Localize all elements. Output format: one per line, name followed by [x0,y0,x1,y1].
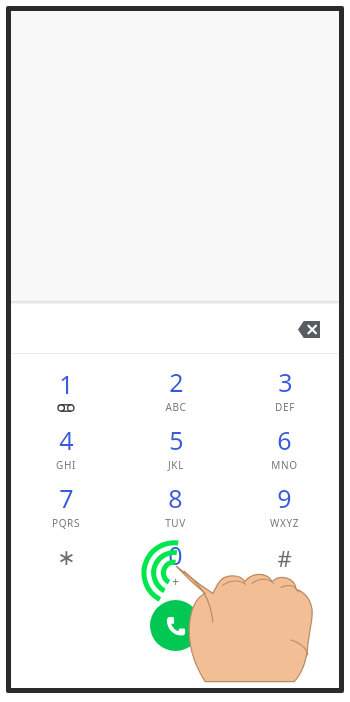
staticText: 6 [277,423,292,457]
staticText: 5 [169,423,184,457]
staticText: TUV [165,516,186,530]
staticText: GHI [56,458,76,472]
staticText: 0 [168,538,183,572]
staticText: 9 [277,481,292,515]
button[interactable]: ∗ [11,534,121,592]
staticText: + [172,573,180,589]
staticText: PQRS [52,516,80,530]
button[interactable]: 5 [121,418,230,476]
button[interactable]: Call [150,600,201,651]
staticText: 4 [59,423,74,457]
staticText: ABC [165,400,187,414]
button[interactable]: 7 [11,476,121,534]
button[interactable]: 3 [230,360,339,418]
staticText: MNO [271,458,298,472]
staticText: 1 [59,367,74,401]
staticText: 7 [59,481,74,515]
staticText: # [277,543,292,573]
staticText: DEF [275,400,295,414]
staticText: WXYZ [270,516,299,530]
button[interactable]: 0 [121,534,230,592]
button[interactable]: 6 [230,418,339,476]
staticText: 3 [278,365,293,399]
staticText: ∗ [57,545,76,571]
staticText: 2 [169,365,184,399]
staticText: JKL [168,458,184,472]
button[interactable]: # [230,534,339,592]
button[interactable]: 1 [11,360,121,418]
button[interactable]: 8 [121,476,230,534]
staticText: 8 [168,481,183,515]
button[interactable]: 2 [121,360,230,418]
button[interactable]: 4 [11,418,121,476]
button[interactable]: Backspace [291,311,327,347]
button[interactable]: 9 [230,476,339,534]
